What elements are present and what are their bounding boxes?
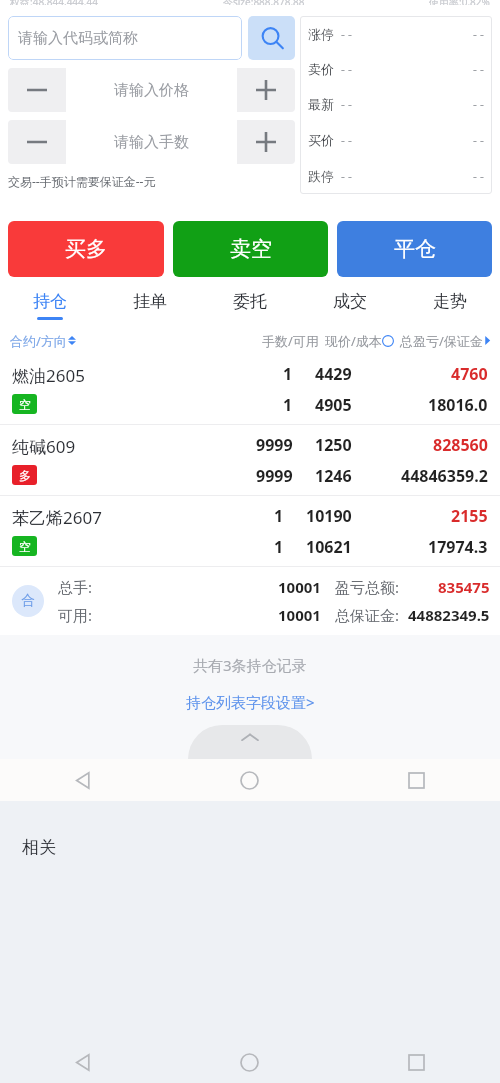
staticText: 9999 [256,434,293,456]
staticText: - - [341,132,352,148]
staticText: 买价 [308,132,334,148]
staticText: 请输入手数 [114,133,189,152]
staticText: 4760 [451,363,488,385]
button[interactable]: 苯乙烯2607 [0,496,500,567]
button[interactable]: 请输入手数 [66,120,237,164]
button[interactable]: 持仓列表字段设置> [186,692,315,712]
staticText: 合约/方向 [10,332,67,350]
button[interactable]: 卖空 [173,221,328,277]
staticText: 828560 [433,434,488,456]
staticText: 跌停 [308,168,334,184]
staticText: 共有3条持仓记录 [193,655,307,675]
staticText: 委托 [233,291,267,312]
staticText: 4429 [315,363,352,385]
button[interactable]: Recents [333,759,500,801]
staticText: 买多 [65,236,107,262]
staticText: 今size:888,878.88 [223,0,305,5]
staticText: 总手: [58,577,93,597]
staticText: 相关 [22,837,56,858]
staticText: 请输入代码或简称 [18,29,138,48]
staticText: 最新 [308,96,334,112]
staticText: - - [341,96,352,112]
button[interactable]: Back [0,759,166,801]
button[interactable]: Decrease [8,120,66,164]
staticText: 盈亏总额: [335,577,400,597]
staticText: 空 [19,397,31,412]
staticText: 持仓 [33,291,67,312]
button[interactable]: 买多 [8,221,164,277]
staticText: 平仓 [394,236,436,262]
staticText: 合 [21,592,35,610]
staticText: - - [341,26,352,42]
staticText: 1246 [315,465,352,487]
staticText: 1 [283,363,293,385]
staticText: - - [473,168,484,184]
button[interactable]: 燃油2605 [0,354,500,425]
button[interactable]: 成交 [300,283,400,327]
staticText: 使用率:0.82% [429,0,490,5]
staticText: 空 [19,539,31,554]
staticText: 总保证金: [335,605,400,625]
staticText: 现价/成本 [325,332,382,350]
staticText: 10001 [278,605,321,625]
button[interactable]: 挂单 [100,283,200,327]
staticText: 交易--手预计需要保证金--元 [8,173,156,189]
button[interactable]: Home [166,759,333,801]
staticText: - - [341,61,352,77]
staticText: 多 [19,468,31,483]
staticText: 10001 [278,577,321,597]
button[interactable]: 走势 [400,283,500,327]
staticText: 总盈亏/保证金 [400,332,483,350]
staticText: 纯碱609 [12,435,76,458]
button[interactable]: 纯碱609 [0,425,500,496]
staticText: 1 [283,394,293,416]
button[interactable]: Home [166,1041,333,1083]
button[interactable]: 请输入代码或简称 [8,16,242,60]
staticText: 44846359.2 [401,465,488,487]
staticText: 2155 [451,505,488,527]
staticText: 10621 [306,536,352,558]
button[interactable]: Back [0,1041,166,1083]
staticText: - - [473,132,484,148]
staticText: 权益:48,844,444.44 [10,0,98,5]
staticText: 燃油2605 [12,364,85,387]
button[interactable]: Increase [237,68,295,112]
button[interactable]: Search [248,16,295,60]
staticText: 44882349.5 [408,605,490,625]
staticText: 卖空 [230,236,272,262]
staticText: - - [473,61,484,77]
button[interactable]: Recents [333,1041,500,1083]
staticText: 18016.0 [428,394,488,416]
staticText: 挂单 [133,291,167,312]
staticText: - - [341,168,352,184]
staticText: 4905 [315,394,352,416]
staticText: 请输入价格 [114,81,189,100]
staticText: 苯乙烯2607 [12,506,102,529]
staticText: 835475 [438,577,490,597]
button[interactable]: Collapse [188,725,312,759]
button[interactable]: Decrease [8,68,66,112]
staticText: 手数/可用 [262,332,319,350]
staticText: - - [473,26,484,42]
staticText: 涨停 [308,26,334,42]
staticText: 1250 [315,434,352,456]
button[interactable]: Increase [237,120,295,164]
staticText: 1 [274,536,284,558]
staticText: 9999 [256,465,293,487]
button[interactable]: 委托 [200,283,300,327]
staticText: 可用: [58,605,93,625]
staticText: 1 [274,505,284,527]
staticText: 卖价 [308,61,334,77]
staticText: 走势 [433,291,467,312]
staticText: 17974.3 [428,536,488,558]
staticText: - - [473,96,484,112]
button[interactable]: 持仓 [0,283,100,327]
button[interactable]: 请输入价格 [66,68,237,112]
staticText: 成交 [333,291,367,312]
staticText: 10190 [306,505,352,527]
staticText: 持仓列表字段设置> [186,692,315,712]
button[interactable]: 平仓 [337,221,492,277]
